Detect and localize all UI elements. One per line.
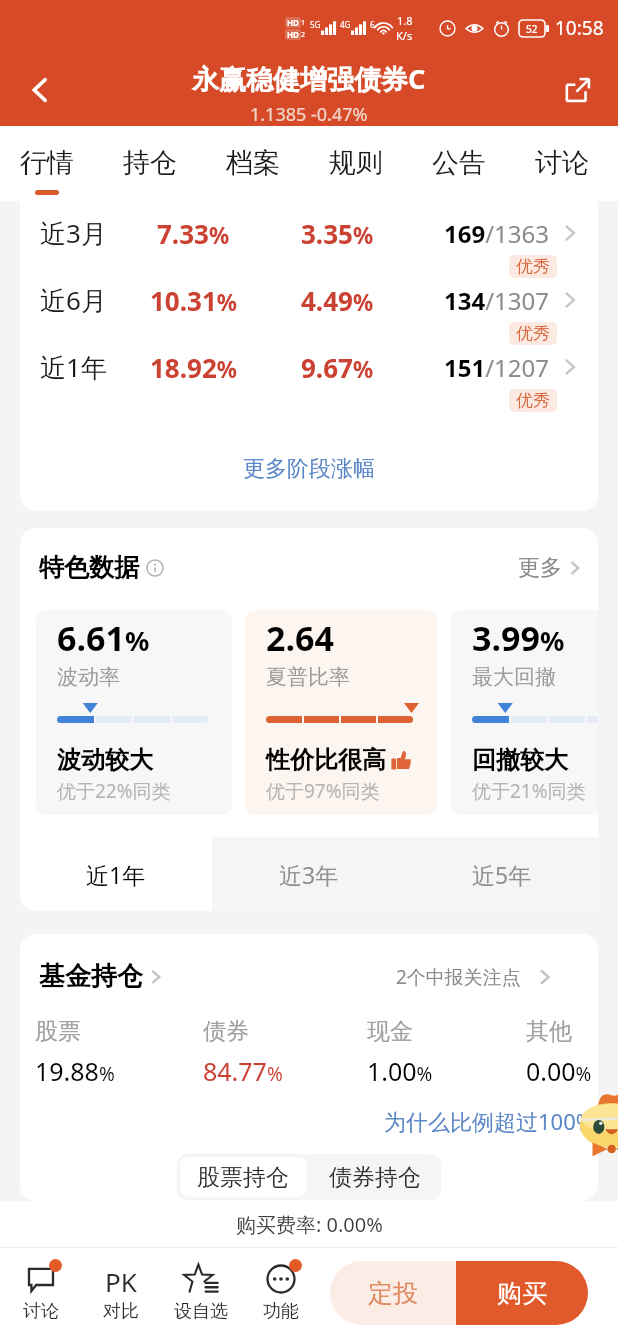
button[interactable]: 持仓: [98, 126, 201, 201]
staticText: 优于22%同类: [57, 778, 171, 804]
staticText: 近5年: [472, 859, 532, 890]
button[interactable]: 近1年: [20, 342, 598, 409]
staticText: 169/1363: [444, 217, 550, 250]
staticText: 优于21%同类: [472, 778, 586, 804]
staticText: 定投: [368, 1278, 418, 1309]
button[interactable]: Share: [550, 62, 606, 118]
staticText: 更多: [518, 554, 562, 582]
button[interactable]: Assistant: [578, 1091, 618, 1157]
staticText: 近3年: [279, 859, 339, 890]
staticText: 购买: [497, 1278, 547, 1309]
staticText: 6.61%: [57, 615, 150, 661]
button[interactable]: 2个中报关注点: [396, 964, 555, 990]
staticText: HD: [287, 17, 299, 28]
staticText: 永赢稳健增强债券C: [192, 60, 426, 97]
staticText: 6: [370, 19, 375, 30]
staticText: 特色数据: [39, 552, 139, 583]
staticText: 档案: [226, 146, 280, 180]
button[interactable]: 基金持仓: [39, 960, 165, 993]
staticText: 优秀: [516, 256, 550, 277]
button[interactable]: 6.61%: [36, 610, 232, 815]
staticText: 近3月: [40, 215, 107, 251]
staticText: 3.35%: [301, 216, 374, 251]
staticText: 4G: [340, 19, 351, 30]
button[interactable]: 设自选: [161, 1248, 241, 1338]
button[interactable]: 规则: [304, 126, 407, 201]
staticText: 134/1307: [444, 284, 550, 317]
button[interactable]: 讨论: [1, 1248, 81, 1338]
button[interactable]: 更多: [518, 554, 584, 582]
staticText: 夏普比率: [266, 664, 350, 690]
button[interactable]: 定投: [330, 1261, 456, 1325]
staticText: 2.64: [266, 615, 334, 661]
staticText: 波动率: [57, 664, 120, 690]
staticText: HD: [287, 29, 299, 40]
button[interactable]: 行情: [0, 126, 98, 201]
staticText: 债券持仓: [329, 1163, 421, 1192]
staticText: 1.8: [397, 13, 413, 28]
staticText: 股票: [35, 1017, 81, 1046]
staticText: 性价比很高: [266, 745, 386, 775]
staticText: 行情: [20, 146, 74, 180]
staticText: 规则: [329, 146, 383, 180]
staticText: 股票持仓: [197, 1163, 289, 1192]
staticText: 设自选: [174, 1300, 228, 1323]
staticText: 151/1207: [444, 351, 550, 384]
staticText: 公告: [432, 146, 486, 180]
staticText: 其他: [526, 1017, 572, 1046]
button[interactable]: 购买: [456, 1261, 588, 1325]
staticText: K/s: [396, 28, 413, 43]
button[interactable]: 3.99%: [451, 610, 598, 815]
staticText: 近6月: [40, 282, 107, 318]
button[interactable]: 更多阶段涨幅: [20, 441, 598, 497]
button[interactable]: 股票持仓: [180, 1157, 306, 1197]
staticText: 9.67%: [301, 350, 374, 385]
staticText: 1.00%: [367, 1054, 433, 1088]
button[interactable]: 档案: [201, 126, 304, 201]
staticText: PK: [105, 1264, 137, 1294]
staticText: 近1年: [40, 349, 107, 385]
staticText: 最大回撤: [472, 664, 556, 690]
staticText: 7.33%: [157, 216, 230, 251]
staticText: 购买费率: 0.00%: [236, 1211, 383, 1238]
button[interactable]: PK: [81, 1248, 161, 1338]
button[interactable]: 近1年: [20, 837, 212, 911]
button[interactable]: 近3年: [212, 837, 405, 911]
button[interactable]: 为什么比例超过100%: [384, 1106, 595, 1136]
staticText: 1: [301, 18, 306, 28]
button[interactable]: 2.64: [245, 610, 437, 815]
staticText: 0.00%: [526, 1054, 592, 1088]
staticText: 基金持仓: [39, 960, 143, 993]
staticText: 10:58: [555, 15, 604, 41]
staticText: 52: [526, 22, 538, 36]
button[interactable]: Back: [12, 62, 68, 118]
button[interactable]: 近3月: [20, 208, 598, 275]
staticText: 现金: [367, 1017, 413, 1046]
staticText: 讨论: [535, 146, 589, 180]
staticText: 优于97%同类: [266, 778, 380, 804]
staticText: 2: [301, 30, 306, 40]
button[interactable]: 公告: [407, 126, 510, 201]
button[interactable]: 讨论: [510, 126, 613, 201]
staticText: 功能: [263, 1300, 299, 1323]
button[interactable]: 近5年: [405, 837, 598, 911]
staticText: 更多阶段涨幅: [243, 455, 375, 483]
staticText: 4.49%: [301, 283, 374, 318]
button[interactable]: 功能: [241, 1248, 321, 1338]
staticText: 5G: [310, 19, 321, 30]
staticText: 对比: [103, 1300, 139, 1323]
button[interactable]: 债券持仓: [312, 1157, 438, 1197]
button[interactable]: 近6月: [20, 275, 598, 342]
staticText: 近1年: [86, 859, 146, 890]
staticText: 债券: [203, 1017, 249, 1046]
staticText: 18.92%: [150, 350, 237, 385]
staticText: 19.88%: [35, 1054, 115, 1088]
staticText: 10.31%: [150, 283, 237, 318]
staticText: 84.77%: [203, 1054, 283, 1088]
staticText: 优秀: [516, 323, 550, 344]
staticText: 持仓: [123, 146, 177, 180]
staticText: 2个中报关注点: [396, 964, 521, 990]
staticText: 波动较大: [57, 745, 153, 775]
staticText: 讨论: [23, 1300, 59, 1323]
staticText: 优秀: [516, 390, 550, 411]
